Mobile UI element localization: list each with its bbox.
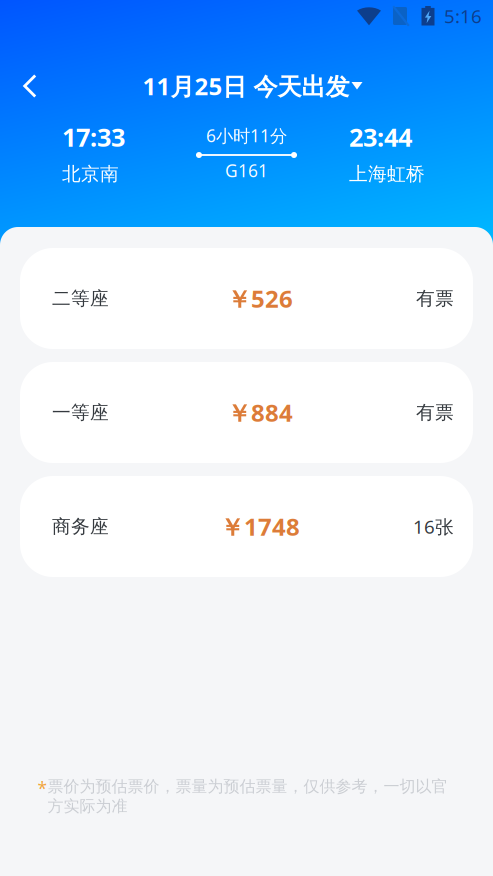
staticText: 商务座	[52, 515, 109, 538]
button[interactable]: Back	[0, 59, 60, 113]
staticText: G161	[225, 159, 268, 182]
staticText: 有票	[416, 401, 454, 424]
staticText: 17:33	[62, 120, 125, 154]
staticText: ￥526	[227, 282, 293, 314]
staticText: 5:16	[444, 4, 482, 28]
staticText: 有票	[416, 287, 454, 310]
staticText: 11月25日 今天出发	[142, 70, 349, 102]
button[interactable]: 一等座	[20, 362, 473, 463]
button[interactable]: 11月25日 今天出发	[118, 59, 374, 113]
button[interactable]: 二等座	[20, 248, 473, 349]
staticText: 上海虹桥	[349, 163, 425, 185]
staticText: 二等座	[52, 287, 109, 310]
staticText: ￥1748	[220, 510, 300, 542]
button[interactable]: 商务座	[20, 476, 473, 577]
staticText: 23:44	[349, 120, 412, 154]
staticText: 16张	[413, 514, 454, 539]
staticText: 6小时11分	[206, 124, 287, 147]
staticText: ￥884	[227, 396, 293, 428]
staticText: 北京南	[62, 163, 119, 185]
staticText: 一等座	[52, 401, 109, 424]
staticText: *	[37, 777, 47, 800]
staticText: 票价为预估票价，票量为预估票量，仅供参考，一切以官方实际为准	[47, 777, 447, 816]
